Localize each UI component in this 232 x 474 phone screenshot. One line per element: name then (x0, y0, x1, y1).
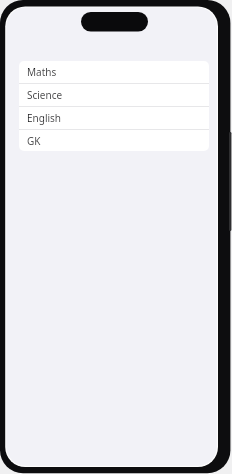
button[interactable]: Maths (19, 61, 209, 83)
button[interactable]: English (19, 107, 209, 129)
button[interactable]: GK (19, 130, 209, 151)
staticText: English (27, 111, 62, 125)
staticText: GK (27, 134, 41, 148)
staticText: Science (27, 88, 63, 102)
staticText: Maths (27, 65, 57, 79)
button[interactable]: Science (19, 84, 209, 106)
